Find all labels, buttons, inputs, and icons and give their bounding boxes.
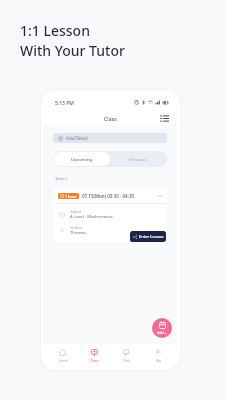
staticText: Student (70, 225, 83, 229)
button[interactable]: 1 hour (53, 188, 167, 242)
staticText: My (156, 358, 161, 363)
staticText: 5:13 PM (55, 100, 74, 107)
staticText: Thomas (70, 230, 86, 236)
staticText: Subject (70, 209, 82, 213)
button[interactable]: Enter Lesson (130, 231, 166, 242)
button[interactable]: Chat (110, 344, 142, 368)
staticText: Enter Lesson (139, 234, 164, 239)
staticText: Asia/Seoul (66, 135, 88, 141)
button[interactable]: Home (47, 344, 78, 368)
staticText: Previous (129, 156, 147, 162)
staticText: 1 hour (65, 194, 77, 199)
staticText: Add + (157, 330, 167, 335)
button[interactable]: Asia/Seoul (53, 133, 167, 143)
staticText: Class (104, 115, 117, 122)
button[interactable]: Class (78, 344, 110, 368)
staticText: Upcoming (71, 156, 93, 162)
button[interactable]: Previous (110, 152, 166, 166)
staticText: 1:1 Lesson (20, 21, 90, 40)
staticText: Total 1 (55, 176, 68, 182)
button[interactable]: Menu (157, 110, 172, 125)
staticText: 07.15(Mon) 03:30 - 04:30 (82, 193, 135, 199)
button[interactable]: My (142, 344, 174, 368)
button[interactable]: Add lesson (152, 318, 172, 338)
staticText: A Level - Mathematics (70, 214, 113, 220)
staticText: Home (58, 358, 68, 363)
button[interactable]: Upcoming (54, 152, 110, 166)
staticText: With Your Tutor (20, 41, 125, 60)
staticText: Class (90, 358, 99, 363)
staticText: Chat (122, 358, 130, 363)
